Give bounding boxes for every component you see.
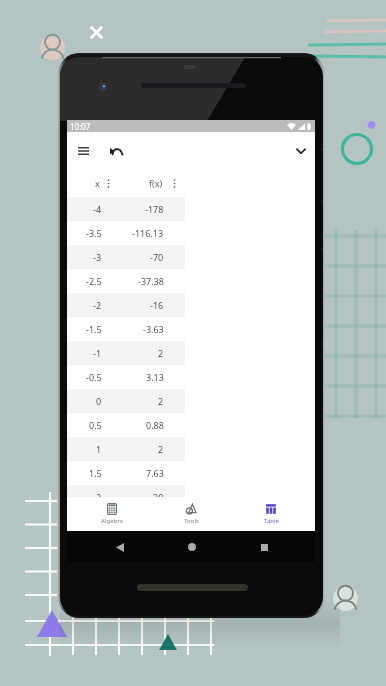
button[interactable]: -2.5: [67, 269, 185, 293]
button[interactable]: -4: [67, 197, 185, 221]
button[interactable]: -0.5: [67, 365, 185, 389]
staticText: Tools: [184, 517, 199, 525]
staticText: 10:07: [70, 121, 91, 132]
button[interactable]: Back: [111, 538, 129, 556]
staticText: -116.13: [132, 227, 164, 239]
staticText: -3: [93, 251, 102, 263]
staticText: 7.63: [146, 467, 164, 479]
button[interactable]: Tools: [156, 497, 226, 531]
button[interactable]: 1.5: [67, 461, 185, 485]
staticText: Algebra: [101, 517, 123, 525]
button[interactable]: Expand: [292, 142, 310, 160]
button[interactable]: 0.5: [67, 413, 185, 437]
button[interactable]: 0: [67, 389, 185, 413]
staticText: 2: [158, 443, 164, 455]
button[interactable]: Close: [86, 22, 106, 42]
button[interactable]: -3.5: [67, 221, 185, 245]
button[interactable]: Undo: [107, 142, 125, 160]
staticText: -1: [93, 347, 102, 359]
button[interactable]: Table: [236, 497, 306, 531]
staticText: -3.63: [143, 323, 164, 335]
staticText: 1: [96, 443, 102, 455]
staticText: -16: [150, 299, 164, 311]
button[interactable]: Menu: [74, 142, 92, 160]
staticText: 0: [96, 395, 102, 407]
staticText: -0.5: [86, 371, 102, 383]
button[interactable]: Algebra: [77, 497, 147, 531]
staticText: 20: [153, 491, 164, 503]
button[interactable]: Profile: [40, 35, 65, 60]
button[interactable]: -1: [67, 341, 185, 365]
button[interactable]: -3: [67, 245, 185, 269]
button[interactable]: -2: [67, 293, 185, 317]
staticText: 2: [158, 395, 164, 407]
button[interactable]: Profile: [333, 586, 358, 611]
staticText: -70: [150, 251, 164, 263]
staticText: -2: [93, 299, 102, 311]
button[interactable]: -1.5: [67, 317, 185, 341]
staticText: Table: [264, 517, 279, 525]
staticText: 2: [158, 347, 164, 359]
staticText: -3.5: [86, 227, 102, 239]
staticText: -2.5: [86, 275, 102, 287]
button[interactable]: Column options: [103, 178, 114, 189]
button[interactable]: 2: [67, 485, 185, 509]
button[interactable]: Recents: [255, 538, 273, 556]
staticText: 3.13: [146, 371, 164, 383]
staticText: 0.88: [146, 419, 164, 431]
staticText: 1.5: [89, 467, 102, 479]
staticText: -1.5: [86, 323, 102, 335]
staticText: x: [95, 177, 100, 189]
staticText: -37.38: [138, 275, 164, 287]
button[interactable]: 1: [67, 437, 185, 461]
button[interactable]: Home: [183, 538, 201, 556]
button[interactable]: Column options: [169, 178, 180, 189]
staticText: 2: [96, 491, 102, 503]
staticText: f(x): [149, 177, 163, 189]
staticText: -178: [145, 203, 164, 215]
staticText: -4: [93, 203, 102, 215]
staticText: 0.5: [89, 419, 102, 431]
